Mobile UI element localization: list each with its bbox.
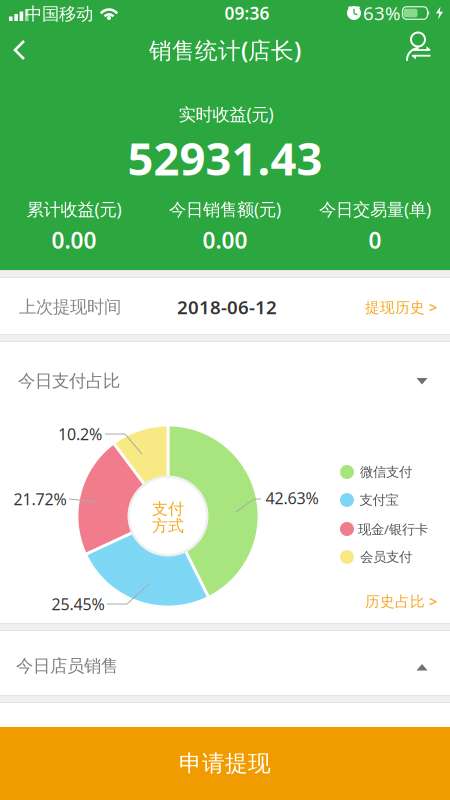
- staticText: 25.45%: [51, 593, 104, 615]
- staticText: 今日销售额(元): [169, 197, 281, 220]
- staticText: 0.00: [51, 225, 96, 255]
- staticText: 42.63%: [265, 487, 318, 509]
- button[interactable]: [399, 30, 435, 68]
- staticText: 中国移动: [25, 3, 93, 25]
- staticText: 2018-06-12: [177, 295, 277, 319]
- button[interactable]: [414, 660, 429, 673]
- staticText: 上次提现时间: [19, 296, 121, 318]
- staticText: 提现历史 >: [365, 297, 437, 317]
- staticText: 10.2%: [58, 423, 102, 445]
- staticText: 累计收益(元): [26, 197, 121, 220]
- staticText: 方式: [152, 516, 184, 536]
- staticText: 实时收益(元): [178, 102, 273, 125]
- staticText: 63%: [363, 1, 401, 25]
- button[interactable]: 提现历史 >: [356, 287, 446, 327]
- staticText: 现金/银行卡: [358, 520, 428, 538]
- button[interactable]: [414, 374, 429, 388]
- staticText: 今日交易量(单): [319, 197, 431, 220]
- staticText: 今日店员销售: [16, 655, 118, 677]
- staticText: 申请提现: [179, 750, 271, 777]
- button[interactable]: 历史占比 >: [356, 583, 446, 619]
- staticText: 今日支付占比: [18, 370, 120, 392]
- button[interactable]: 申请提现: [0, 727, 450, 800]
- staticText: 0: [368, 225, 381, 255]
- staticText: 支付宝: [359, 492, 398, 508]
- staticText: 销售统计(店长): [149, 35, 301, 65]
- staticText: 会员支付: [360, 549, 412, 565]
- staticText: 52931.43: [127, 128, 322, 188]
- staticText: 历史占比 >: [365, 591, 437, 611]
- staticText: 微信支付: [360, 464, 412, 480]
- staticText: 21.72%: [13, 488, 66, 510]
- staticText: 支付: [152, 499, 184, 519]
- staticText: 09:36: [224, 1, 269, 24]
- button[interactable]: [3, 32, 39, 68]
- staticText: 0.00: [202, 225, 247, 255]
